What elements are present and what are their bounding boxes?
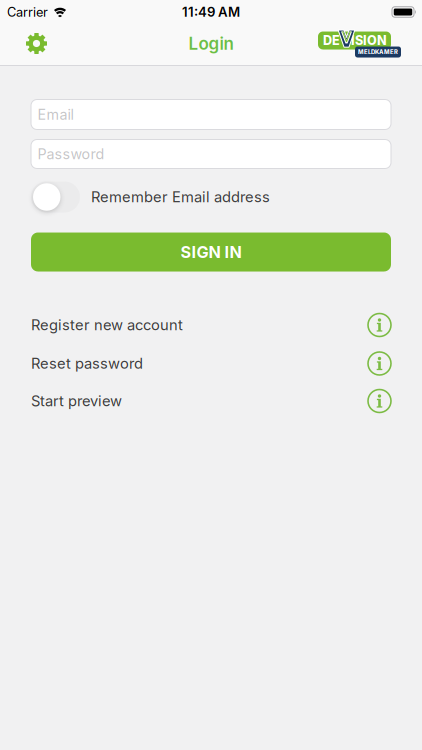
button[interactable]: Remember Email address xyxy=(31,181,80,212)
button[interactable]: Info about Start preview xyxy=(368,389,391,412)
staticText: 11:49 AM xyxy=(182,4,240,20)
staticText: Email xyxy=(37,106,73,123)
button[interactable]: Info about Register new account xyxy=(368,313,391,336)
staticText: Password xyxy=(37,145,104,163)
staticText: Login xyxy=(188,33,233,54)
staticText: Register new account xyxy=(31,316,183,334)
staticText: MELDKAMER xyxy=(358,48,398,55)
button[interactable]: Reset password xyxy=(31,355,143,372)
button[interactable]: Register new account xyxy=(31,316,183,334)
staticText: DE xyxy=(323,33,340,48)
staticText: Start preview xyxy=(31,392,122,410)
staticText: Carrier xyxy=(7,4,48,20)
button[interactable]: SIGN IN xyxy=(31,232,391,271)
staticText: Remember Email address xyxy=(91,188,270,206)
staticText: Reset password xyxy=(31,355,143,372)
button[interactable]: Info about Reset password xyxy=(368,352,391,375)
button[interactable]: Start preview xyxy=(31,392,122,410)
button[interactable]: Settings xyxy=(0,34,47,55)
staticText: SIGN IN xyxy=(180,242,241,262)
staticText: ISION xyxy=(351,33,387,48)
